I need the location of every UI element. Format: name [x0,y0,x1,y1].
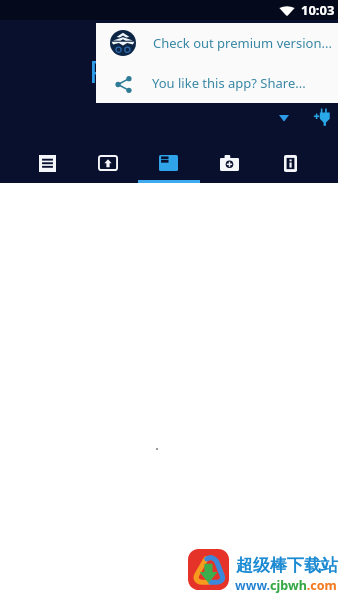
button[interactable]: Check out premium version... [96,23,338,63]
staticText: Psiphon Pro [89,50,265,92]
staticText: www.cjbwh.com [235,577,337,594]
button[interactable]: You like this app? Share... [96,63,338,103]
staticText: Check out premium version... [153,34,332,52]
button[interactable]: Upload [77,135,138,183]
button[interactable]: Browser [138,135,199,183]
button[interactable]: Expand region list [267,101,300,134]
staticText: You like this app? Share... [152,74,306,92]
button[interactable]: Add connection [304,100,338,134]
button[interactable]: Logs [17,135,77,183]
button[interactable]: Camera [199,135,260,183]
staticText: 10:03 [301,1,335,19]
staticText: 超级棒下载站 [236,555,338,576]
button[interactable]: Device info [260,135,321,183]
